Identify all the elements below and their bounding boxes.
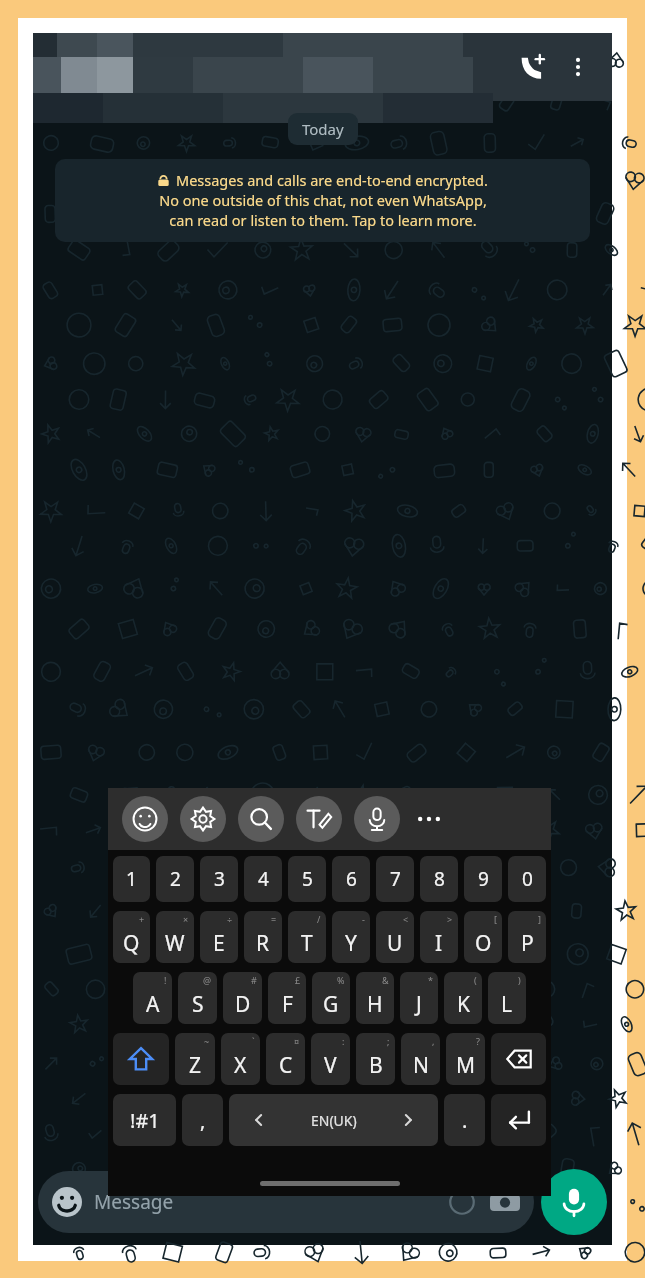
staticText: * [428,974,433,986]
staticText: Messages and calls are end-to-end encryp… [176,170,488,190]
button[interactable]: More options [556,45,600,89]
staticText: > [447,913,453,925]
button[interactable]: / [288,911,326,963]
button[interactable]: < [376,911,414,963]
staticText: Q [123,929,140,958]
button[interactable]: : [311,1033,350,1085]
staticText: ) [518,974,521,986]
staticText: 3 [214,866,225,892]
button[interactable]: ~ [175,1033,215,1085]
button[interactable]: 2 [156,856,194,902]
button[interactable]: Messages and calls are end-to-end encryp… [55,159,590,242]
button[interactable]: - [332,911,370,963]
staticText: U [387,929,403,958]
button[interactable]: , [401,1033,440,1085]
staticText: ¤ [294,1035,300,1047]
staticText: % [337,974,345,986]
button[interactable]: Today [288,113,358,145]
staticText: 9 [478,866,489,892]
staticText: S [192,990,204,1019]
button[interactable]: Voice call [508,43,556,91]
button[interactable]: Emoji [122,796,168,842]
button[interactable]: % [312,972,350,1024]
staticText: 4 [258,866,269,892]
button[interactable]: ) [488,972,526,1024]
staticText: 7 [390,866,401,892]
button[interactable]: ÷ [200,911,238,963]
button[interactable]: Settings [180,796,226,842]
button[interactable]: 0 [508,856,546,902]
staticText: 2 [170,866,181,892]
button[interactable]: EN(UK) [229,1094,438,1146]
button[interactable]: 4 [244,856,282,902]
button[interactable]: 8 [420,856,458,902]
button[interactable]: Message [38,1171,534,1233]
staticText: ; [387,1035,390,1047]
button[interactable]: & [356,972,394,1024]
staticText: 5 [302,866,313,892]
button[interactable]: = [244,911,282,963]
button[interactable]: Shift [113,1033,169,1085]
button[interactable]: 5 [288,856,326,902]
button[interactable]: ; [356,1033,395,1085]
staticText: + [139,913,145,925]
staticText: X [234,1051,247,1080]
button[interactable]: 1 [113,856,150,902]
staticText: K [457,990,470,1019]
button[interactable]: ? [446,1033,485,1085]
button[interactable]: Camera [490,1187,520,1217]
button[interactable]: ! [133,972,172,1024]
staticText: , [200,1107,206,1134]
button[interactable]: # [223,972,262,1024]
staticText: ] [538,913,541,925]
button[interactable]: Search [238,796,284,842]
button[interactable]: Attach [448,1188,476,1216]
button[interactable]: 7 [376,856,414,902]
staticText: : [342,1035,345,1047]
button[interactable]: , [182,1094,223,1146]
button[interactable]: * [400,972,438,1024]
button[interactable]: Handwriting [296,796,342,842]
button[interactable]: Voice message [541,1169,607,1235]
button[interactable]: ( [444,972,482,1024]
button[interactable]: > [420,911,458,963]
staticText: E [213,929,225,958]
staticText: ! [164,974,167,986]
button[interactable]: !#1 [113,1094,176,1146]
button[interactable]: £ [268,972,306,1024]
staticText: H [367,990,383,1019]
button[interactable]: @ [178,972,217,1024]
staticText: J [416,990,422,1019]
button[interactable]: ] [508,911,546,963]
button[interactable]: 3 [200,856,238,902]
staticText: N [413,1051,429,1080]
button[interactable]: . [444,1094,485,1146]
button[interactable]: ¤ [266,1033,305,1085]
staticText: Y [345,929,357,958]
staticText: = [271,913,277,925]
staticText: 6 [346,866,357,892]
button[interactable]: [ [464,911,502,963]
staticText: B [369,1051,383,1080]
button[interactable]: Voice input [354,796,400,842]
button[interactable]: 9 [464,856,502,902]
button[interactable]: × [156,911,194,963]
staticText: Message [94,1189,174,1215]
staticText: 0 [522,866,533,892]
staticText: / [317,913,321,925]
staticText: . [462,1107,468,1134]
button[interactable]: 6 [332,856,370,902]
button[interactable]: + [113,911,150,963]
button[interactable]: More [406,796,452,842]
staticText: O [475,929,492,958]
button[interactable]: ` [221,1033,260,1085]
staticText: £ [295,974,301,986]
staticText: M [456,1051,476,1080]
button[interactable]: Backspace [491,1033,546,1085]
staticText: , [432,1035,435,1047]
staticText: Z [189,1051,202,1080]
staticText: T [301,929,313,958]
staticText: & [382,974,389,986]
button[interactable]: Enter [491,1094,546,1146]
staticText: ( [474,974,477,986]
